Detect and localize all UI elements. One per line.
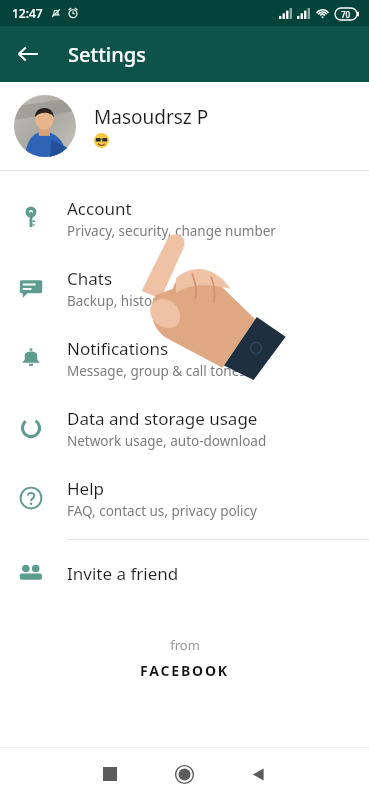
button[interactable]: Home [147, 748, 221, 800]
button[interactable]: Masoudrsz P [0, 82, 369, 170]
staticText: Privacy, security, change number [67, 222, 276, 240]
button[interactable]: Back [221, 748, 295, 800]
staticText: Account [67, 197, 132, 220]
button[interactable]: Chats [0, 253, 369, 323]
staticText: Data and storage usage [67, 407, 258, 430]
staticText: Network usage, auto-download [67, 432, 267, 450]
button[interactable]: Data and storage usage [0, 393, 369, 463]
staticText: from [170, 636, 200, 654]
staticText: 12:47 [12, 5, 43, 21]
staticText: Message, group & call tones [67, 362, 246, 380]
staticText: Notifications [67, 337, 169, 360]
button[interactable]: Help [0, 463, 369, 533]
staticText: Settings [68, 41, 146, 68]
staticText: FAQ, contact us, privacy policy [67, 502, 257, 520]
staticText: Chats [67, 267, 113, 290]
staticText: Invite a friend [67, 562, 179, 585]
staticText: Help [67, 477, 105, 500]
staticText: 70 [341, 9, 351, 20]
button[interactable]: Invite a friend [0, 546, 369, 600]
button[interactable]: Account [0, 183, 369, 253]
button[interactable]: Notifications [0, 323, 369, 393]
button[interactable]: Recents [73, 748, 147, 800]
button[interactable]: Back [6, 32, 50, 76]
staticText: FACEBOOK [140, 661, 229, 680]
staticText: Backup, history, theme [67, 292, 213, 310]
staticText: Masoudrsz P [94, 104, 209, 130]
